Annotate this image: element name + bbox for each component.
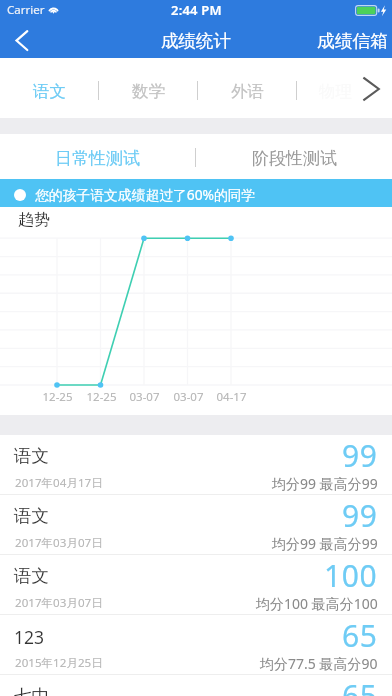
staticText: 趋势 [18,210,50,230]
staticText: 均分99 最高分99 [272,474,378,493]
staticText: 阶段性测试 [252,148,337,169]
button[interactable]: 语文 [0,58,98,118]
staticText: 均分100 最高分100 [256,594,378,613]
staticText: 99 [342,435,378,476]
staticText: 99 [342,495,378,536]
button[interactable]: More subjects [348,58,392,118]
staticText: 2015年12月25日 [15,655,103,671]
staticText: 语文 [33,81,66,102]
staticText: 语文 [14,505,49,527]
staticText: 均分77.5 最高分90 [260,654,378,673]
button[interactable]: 语文 [0,435,392,495]
staticText: 2:44 PM [171,1,222,19]
button[interactable]: 阶段性测试 [196,134,392,179]
staticText: 123 [14,625,45,649]
staticText: Carrier [7,2,45,18]
staticText: 成绩统计 [161,30,231,52]
staticText: 2017年03月07日 [15,595,103,611]
staticText: 65 [342,615,378,656]
staticText: 您的孩子语文成绩超过了60%的同学 [35,185,256,204]
staticText: 外语 [231,81,264,102]
staticText: 语文 [14,565,49,587]
staticText: 100 [324,555,378,596]
staticText: 成绩信箱 [317,30,389,52]
staticText: 03-07 [129,389,160,405]
button[interactable]: 成绩信箱 [311,20,392,58]
staticText: 均分99 最高分99 [272,534,378,553]
staticText: 2017年03月07日 [15,535,103,551]
staticText: 数学 [132,81,165,102]
button[interactable]: 外语 [198,58,296,118]
staticText: 2017年04月17日 [15,475,103,491]
staticText: 七中 [14,685,49,696]
button[interactable]: 123 [0,615,392,675]
staticText: 12-25 [42,389,73,405]
staticText: 03-07 [173,389,204,405]
staticText: 04-17 [216,389,247,405]
staticText: 语文 [14,445,49,467]
button[interactable]: 数学 [99,58,197,118]
button[interactable]: 七中 [0,675,392,696]
button[interactable]: 日常性测试 [0,134,195,179]
button[interactable]: 语文 [0,495,392,555]
button[interactable]: Back [0,20,44,58]
button[interactable]: 语文 [0,555,392,615]
staticText: 65 [342,675,378,696]
staticText: 12-25 [86,389,117,405]
staticText: 日常性测试 [55,148,140,169]
